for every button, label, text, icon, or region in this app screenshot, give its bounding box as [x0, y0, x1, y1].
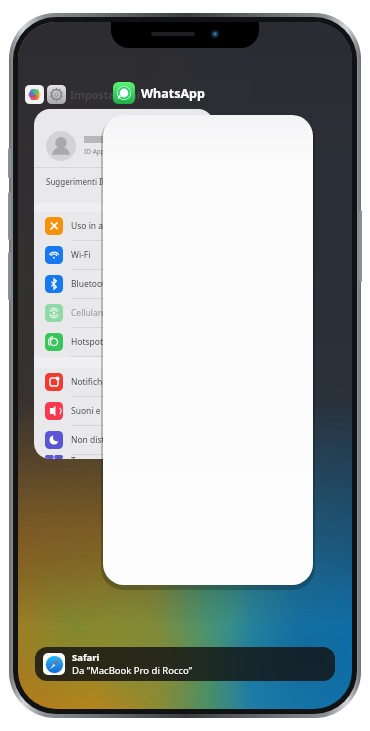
- staticText: Notifiche: [71, 376, 108, 388]
- button[interactable]: Wi-Fi: [45, 241, 214, 269]
- staticText: Safari: [72, 651, 100, 664]
- button[interactable]: Tempo di utilizzo: [45, 455, 214, 459]
- button[interactable]: Hotspot personale: [45, 328, 214, 356]
- staticText: Impostazioni: [70, 87, 140, 102]
- staticText: Tempo di utilizzo: [71, 455, 139, 459]
- staticText: ID Apple, iCloud: [84, 147, 133, 156]
- staticText: Bluetooth: [71, 278, 111, 290]
- button[interactable]: Impostazioni: [47, 85, 66, 104]
- staticText: Suggerimenti ID Apple: [46, 176, 132, 187]
- button[interactable]: Non disturbare: [45, 426, 214, 454]
- button[interactable]: Uso in aereo: [45, 212, 214, 240]
- staticText: Suoni e feedback: [71, 405, 140, 417]
- staticText: Da “MacBook Pro di Rocco”: [72, 664, 193, 677]
- staticText: Non disturbare: [71, 434, 132, 446]
- staticText: Hotspot personale: [71, 336, 145, 348]
- button[interactable]: Suoni e feedback: [45, 397, 214, 425]
- button[interactable]: WhatsApp: [113, 80, 205, 106]
- button[interactable]: Cellulare: [45, 299, 214, 327]
- button[interactable]: Safari: [43, 647, 327, 681]
- button[interactable]: Bluetooth: [45, 270, 214, 298]
- staticText: WhatsApp: [141, 85, 205, 102]
- button[interactable]: Foto: [25, 85, 44, 104]
- staticText: Uso in aereo: [71, 220, 122, 232]
- button[interactable]: ID Apple, iCloud: [34, 109, 214, 459]
- staticText: Wi-Fi: [71, 249, 91, 261]
- staticText: Cellulare: [71, 307, 106, 319]
- button[interactable]: [103, 115, 313, 585]
- button[interactable]: Notifiche: [45, 368, 214, 396]
